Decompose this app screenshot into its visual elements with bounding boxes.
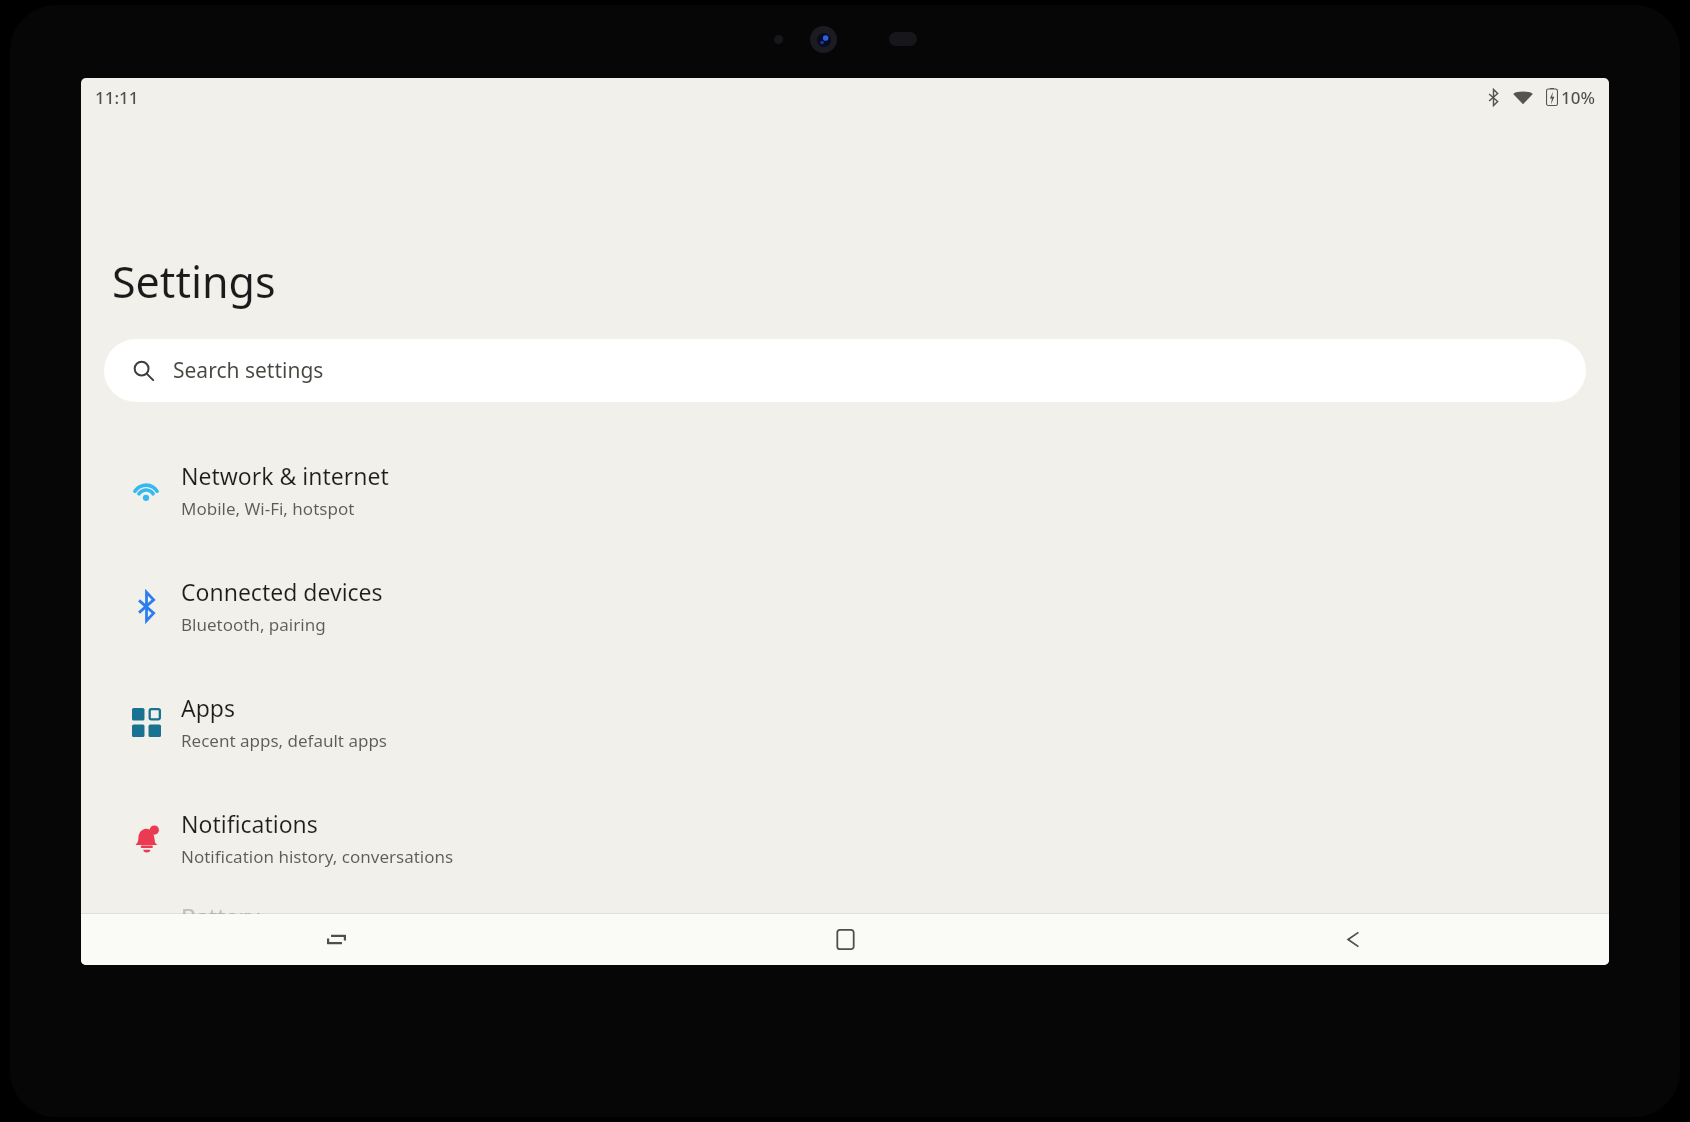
staticText: Connected devices (181, 576, 383, 607)
staticText: Settings (112, 252, 276, 311)
staticText: Network & internet (181, 460, 389, 491)
button[interactable]: Network & internet (81, 432, 1609, 548)
button[interactable]: Apps (81, 664, 1609, 780)
staticText: Apps (181, 692, 236, 723)
staticText: 10% (1561, 86, 1595, 109)
staticText: Battery (181, 901, 260, 932)
button[interactable]: Back (1100, 914, 1609, 965)
staticText: Notification history, conversations (181, 845, 454, 868)
staticText: Notifications (181, 808, 318, 839)
button[interactable]: Home (591, 914, 1100, 965)
button[interactable]: Connected devices (81, 548, 1609, 664)
staticText: Mobile, Wi-Fi, hotspot (181, 497, 355, 520)
button[interactable]: Search settings (104, 339, 1586, 402)
staticText: Recent apps, default apps (181, 729, 388, 752)
button[interactable]: Recent apps (81, 914, 591, 965)
staticText: Search settings (173, 356, 324, 385)
button[interactable]: Battery (81, 896, 1609, 965)
staticText: 11:11 (95, 86, 139, 109)
button[interactable]: Notifications (81, 780, 1609, 896)
staticText: 10% - 2 hr 44 min left until full (181, 938, 420, 961)
staticText: Bluetooth, pairing (181, 613, 326, 636)
